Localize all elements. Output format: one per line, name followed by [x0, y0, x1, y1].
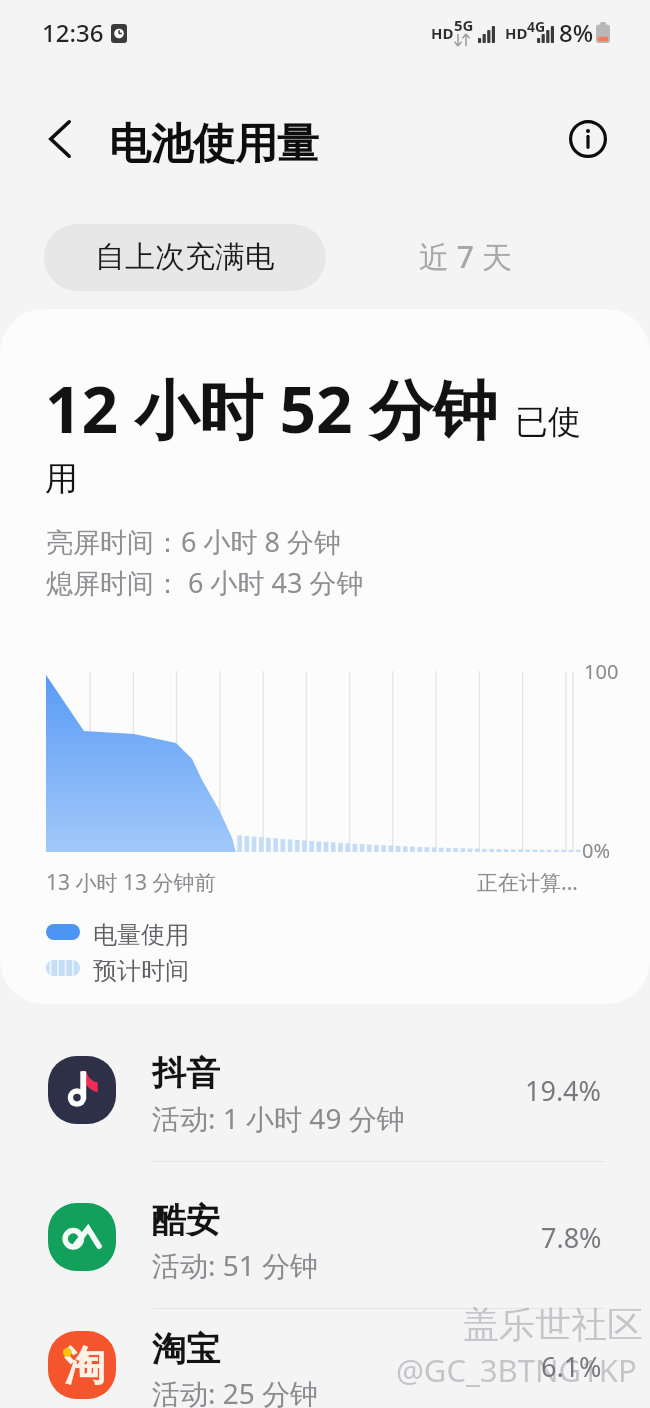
staticText: 自上次充满电 [95, 238, 275, 276]
staticText: 电量使用 [93, 920, 189, 950]
staticText: 7.8% [541, 1219, 602, 1256]
staticText: 活动: 1 小时 49 分钟 [152, 1099, 405, 1137]
staticText: 亮屏时间：6 小时 8 分钟 [46, 523, 341, 560]
staticText: 近 7 天 [419, 236, 512, 277]
staticText: 8% [559, 16, 594, 49]
staticText: 0% [582, 837, 611, 864]
staticText: 活动: 25 分钟 [152, 1374, 319, 1408]
staticText: 活动: 51 分钟 [152, 1246, 319, 1284]
staticText: 淘 [64, 1341, 105, 1393]
staticText: 5G [454, 15, 474, 35]
staticText: HD [431, 23, 454, 43]
staticText: 6.1% [541, 1348, 602, 1385]
staticText: 用 [45, 458, 78, 500]
staticText: 正在计算... [477, 868, 578, 897]
staticText: @GC_3BTNG1KP [396, 1349, 637, 1391]
staticText: 淘宝 [152, 1328, 220, 1371]
staticText: 12:36 [42, 16, 104, 49]
button[interactable]: 自上次充满电 [44, 224, 326, 291]
staticText: 电池使用量 [109, 118, 319, 171]
button[interactable]: Information [558, 109, 618, 169]
staticText: 12 小时 52 分钟 [45, 365, 498, 452]
staticText: 19.4% [525, 1072, 602, 1109]
staticText: 预计时间 [93, 956, 189, 986]
button[interactable]: 酷安 [0, 1151, 650, 1298]
button[interactable]: 淘 [0, 1298, 650, 1408]
staticText: 13 小时 13 分钟前 [46, 868, 216, 897]
staticText: 酷安 [152, 1199, 220, 1242]
staticText: 抖音 [152, 1052, 220, 1095]
staticText: HD [505, 23, 528, 43]
staticText: 盖乐世社区 [463, 1302, 643, 1347]
staticText: 已使 [515, 401, 581, 443]
staticText: 100 [584, 658, 619, 685]
button[interactable]: 抖音 [0, 1004, 650, 1151]
button[interactable]: Back [26, 105, 94, 173]
staticText: 熄屏时间： 6 小时 43 分钟 [46, 564, 364, 601]
staticText: 4G [527, 17, 546, 36]
button[interactable]: 近 7 天 [370, 224, 560, 291]
